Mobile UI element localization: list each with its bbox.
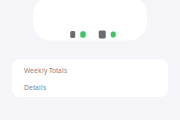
staticText: Weekly Totals: [24, 66, 67, 75]
button[interactable]: Status: [99, 30, 116, 38]
button[interactable]: Details: [12, 78, 168, 97]
button[interactable]: Activity: [70, 31, 86, 38]
staticText: Details: [24, 83, 46, 92]
button[interactable]: Weekly Totals: [12, 59, 168, 78]
